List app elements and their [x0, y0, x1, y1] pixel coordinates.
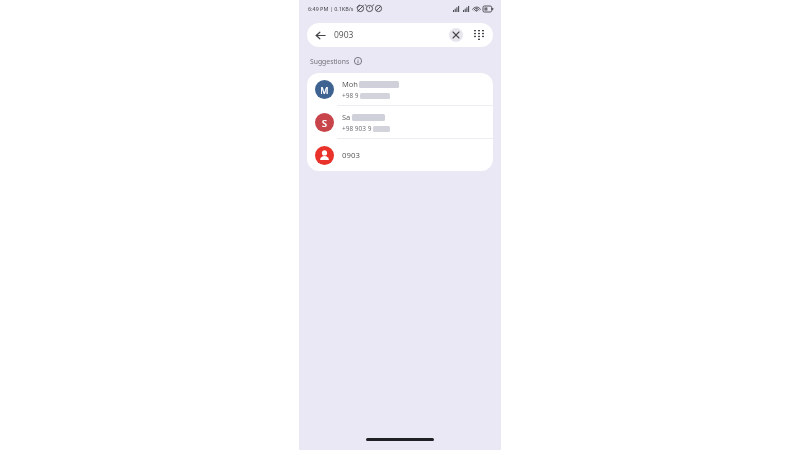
- staticText: 6:49 PM | 0.1KB/s: [308, 5, 354, 12]
- staticText: 0903: [334, 29, 354, 41]
- staticText: Suggestions: [310, 57, 350, 66]
- button[interactable]: M: [307, 73, 493, 105]
- staticText: 0903: [342, 150, 360, 161]
- staticText: M: [320, 84, 329, 96]
- staticText: +98 9: [342, 91, 359, 100]
- button[interactable]: 0903: [307, 139, 493, 171]
- button[interactable]: Clear text: [449, 28, 463, 42]
- staticText: +98 903 9: [342, 124, 372, 133]
- staticText: S: [322, 117, 327, 129]
- button[interactable]: S: [307, 106, 493, 138]
- button[interactable]: Back: [312, 27, 328, 43]
- staticText: Sa: [342, 112, 351, 122]
- button[interactable]: Back: [307, 23, 493, 47]
- staticText: Moh: [342, 79, 358, 89]
- button[interactable]: About suggestions: [353, 56, 363, 66]
- button[interactable]: Dialpad: [470, 26, 488, 44]
